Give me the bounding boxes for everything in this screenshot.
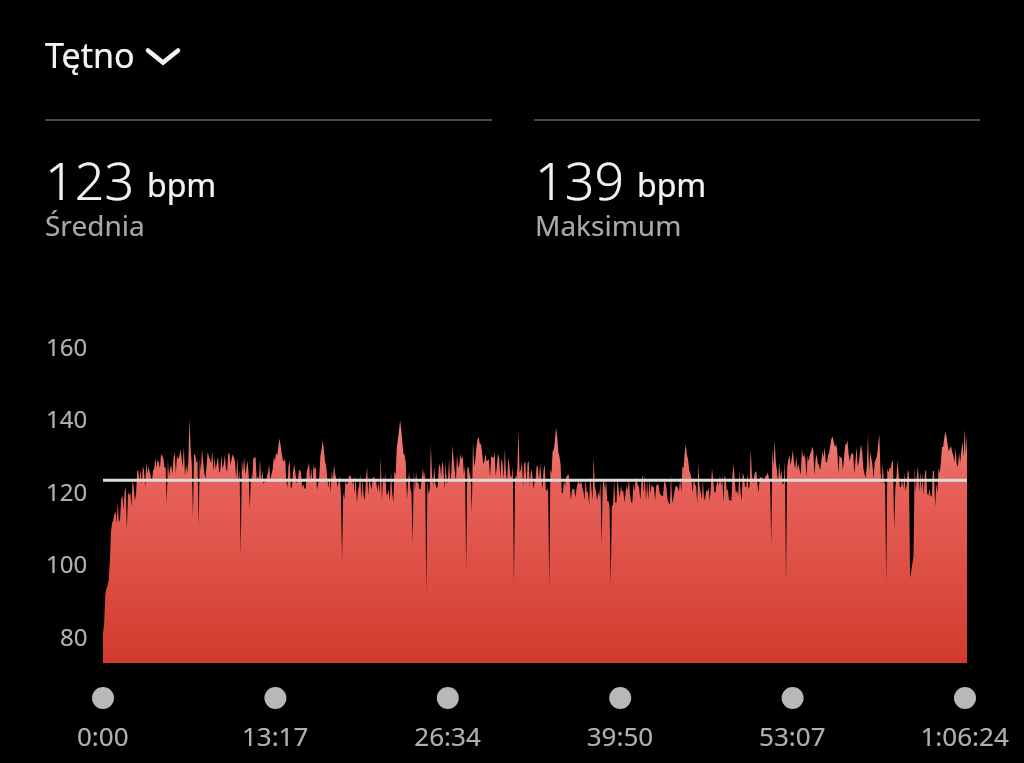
- button[interactable]: Tętno, zmień metrykę: [0, 0, 180, 62]
